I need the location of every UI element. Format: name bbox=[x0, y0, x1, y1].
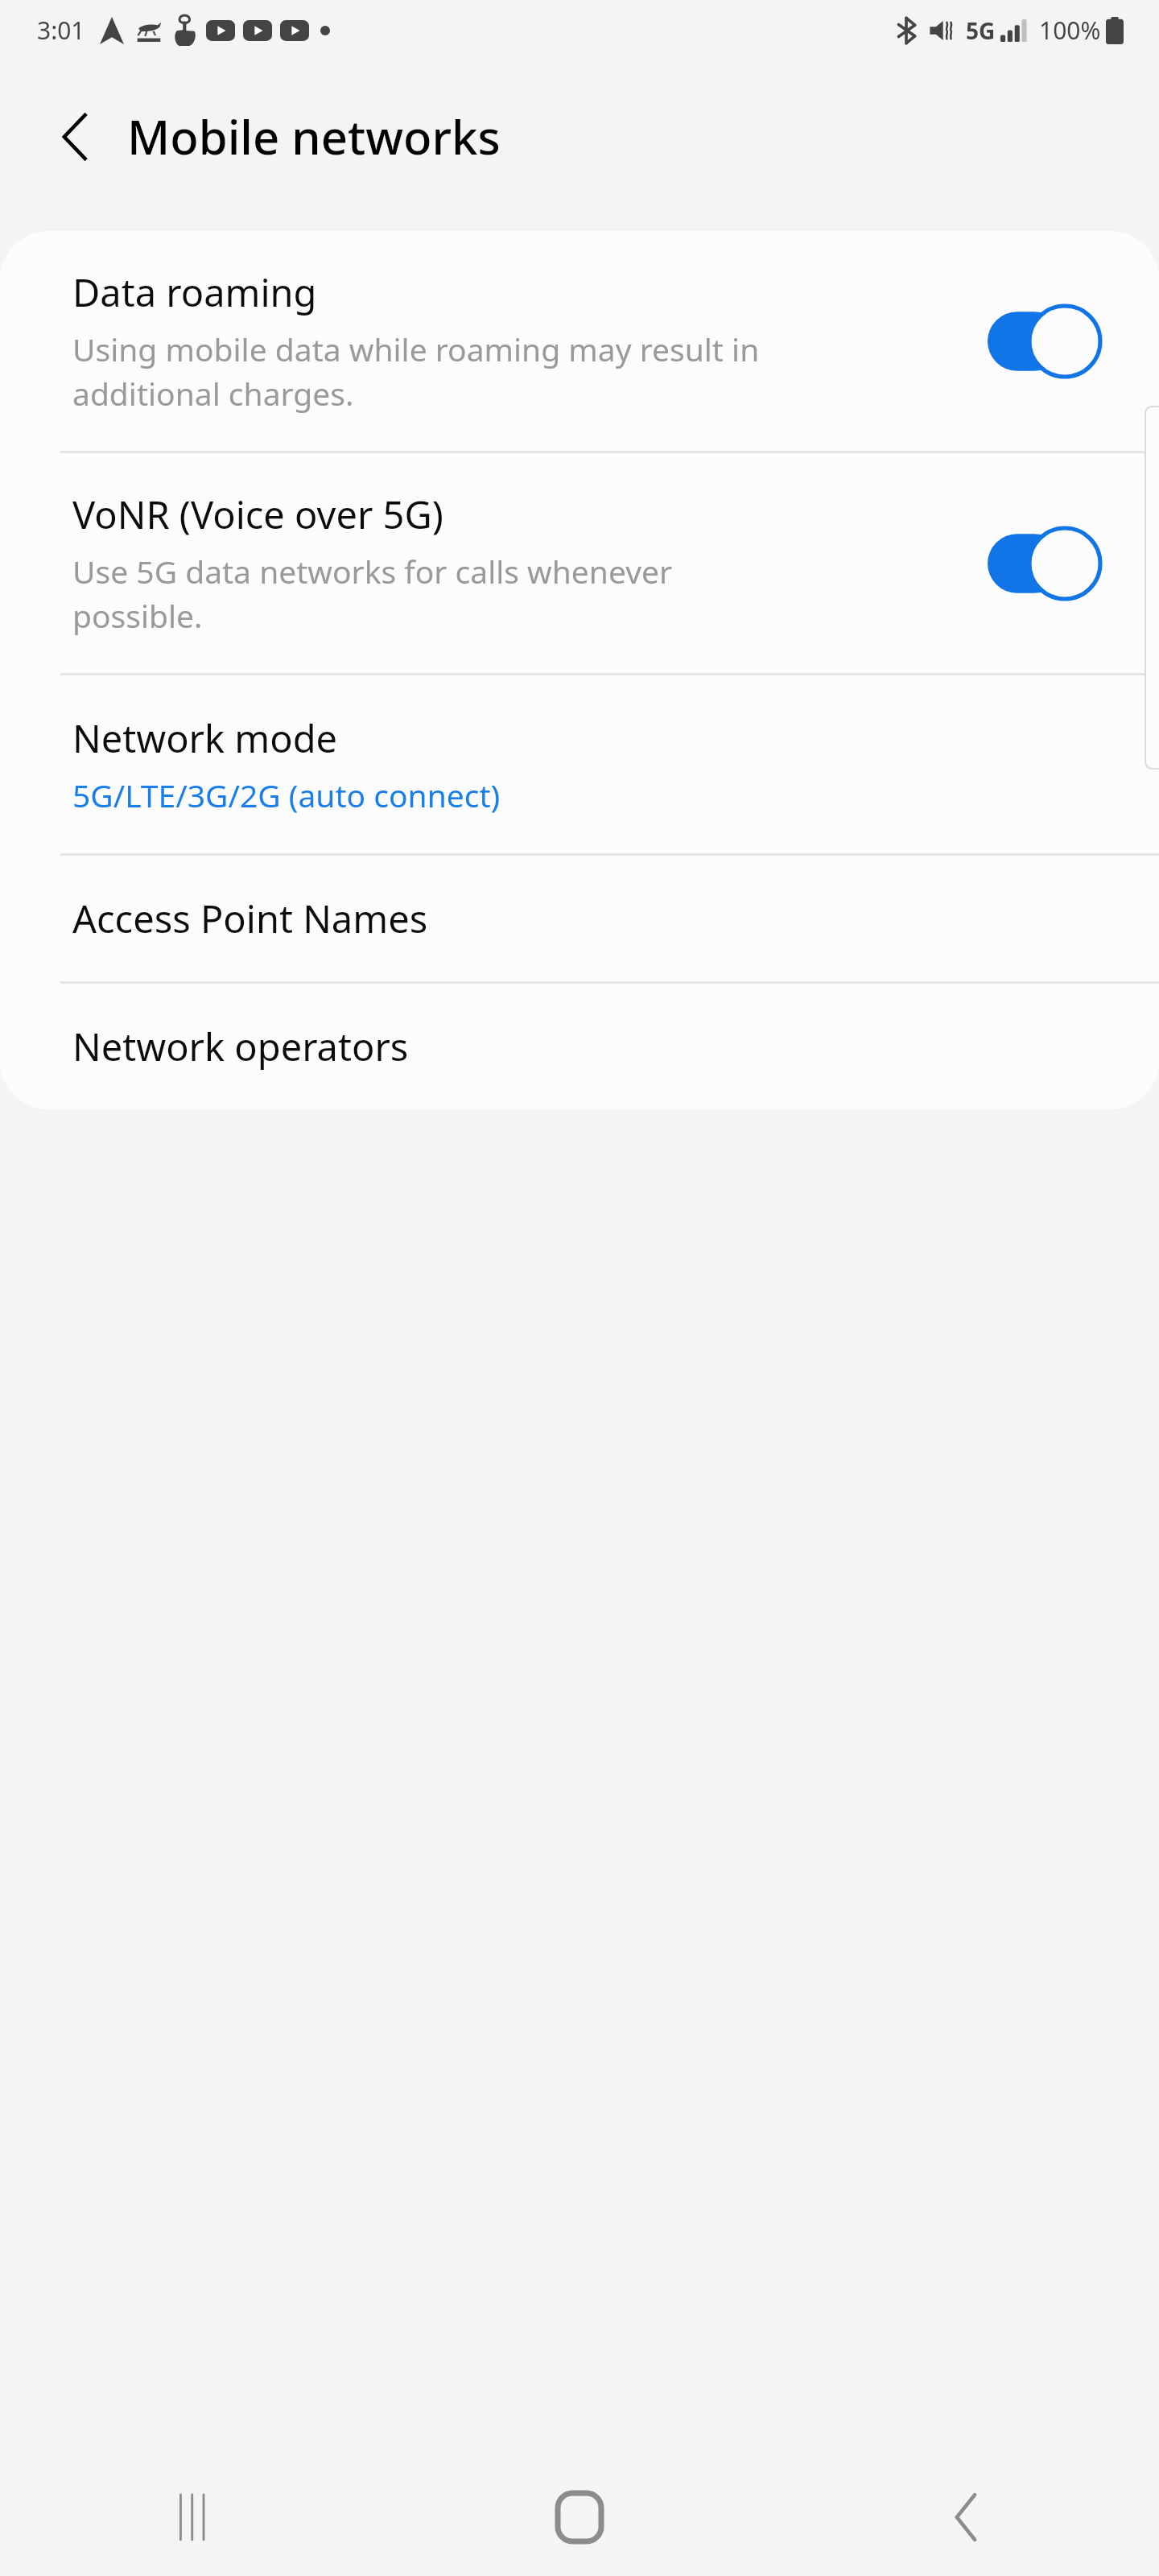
staticText: Using mobile data while roaming may resu… bbox=[72, 328, 760, 415]
button[interactable]: Network operators bbox=[0, 984, 1159, 1109]
button[interactable]: Network mode bbox=[0, 675, 1159, 853]
staticText: 5G/LTE/3G/2G (auto connect) bbox=[72, 774, 501, 816]
staticText: VoNR (Voice over 5G) bbox=[72, 489, 443, 540]
button[interactable]: Access Point Names bbox=[0, 856, 1159, 981]
staticText: 3:01 bbox=[37, 14, 85, 47]
button[interactable]: Back bbox=[47, 109, 103, 165]
staticText: 5G bbox=[966, 15, 996, 46]
button[interactable]: Toggle bbox=[986, 303, 1103, 380]
button[interactable]: VoNR (Voice over 5G) bbox=[0, 453, 1159, 673]
button[interactable]: Data roaming bbox=[0, 231, 1159, 451]
staticText: 100% bbox=[1039, 14, 1101, 47]
staticText: Use 5G data networks for calls whenever … bbox=[72, 550, 673, 638]
button[interactable]: Back bbox=[905, 2458, 1026, 2576]
staticText: Network mode bbox=[72, 712, 338, 764]
staticText: Access Point Names bbox=[72, 893, 428, 944]
button[interactable]: Toggle bbox=[986, 525, 1103, 602]
staticText: Data roaming bbox=[72, 266, 317, 318]
button[interactable]: Home bbox=[519, 2458, 640, 2576]
staticText: Network operators bbox=[72, 1021, 409, 1072]
staticText: Mobile networks bbox=[127, 105, 501, 168]
button[interactable]: Recents bbox=[133, 2458, 254, 2576]
